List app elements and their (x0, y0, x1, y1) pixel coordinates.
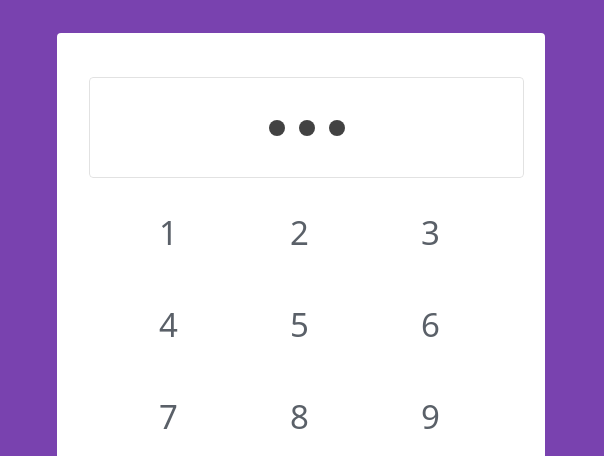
staticText: 6 (421, 302, 440, 347)
staticText: 1 (159, 210, 178, 255)
button[interactable]: 8 (234, 370, 365, 456)
button[interactable]: 1 (103, 186, 234, 278)
staticText: 4 (159, 302, 178, 347)
button[interactable]: 5 (234, 278, 365, 370)
staticText: 8 (290, 394, 309, 439)
staticText: 9 (421, 394, 440, 439)
staticText: 7 (159, 394, 178, 439)
button[interactable]: 9 (365, 370, 496, 456)
staticText: 5 (290, 302, 309, 347)
button[interactable]: 3 (365, 186, 496, 278)
button[interactable]: 7 (103, 370, 234, 456)
button[interactable]: 4 (103, 278, 234, 370)
staticText: 3 (421, 210, 440, 255)
button[interactable]: 6 (365, 278, 496, 370)
button[interactable]: 2 (234, 186, 365, 278)
staticText: 2 (290, 210, 309, 255)
other: PIN entry field (89, 77, 524, 178)
